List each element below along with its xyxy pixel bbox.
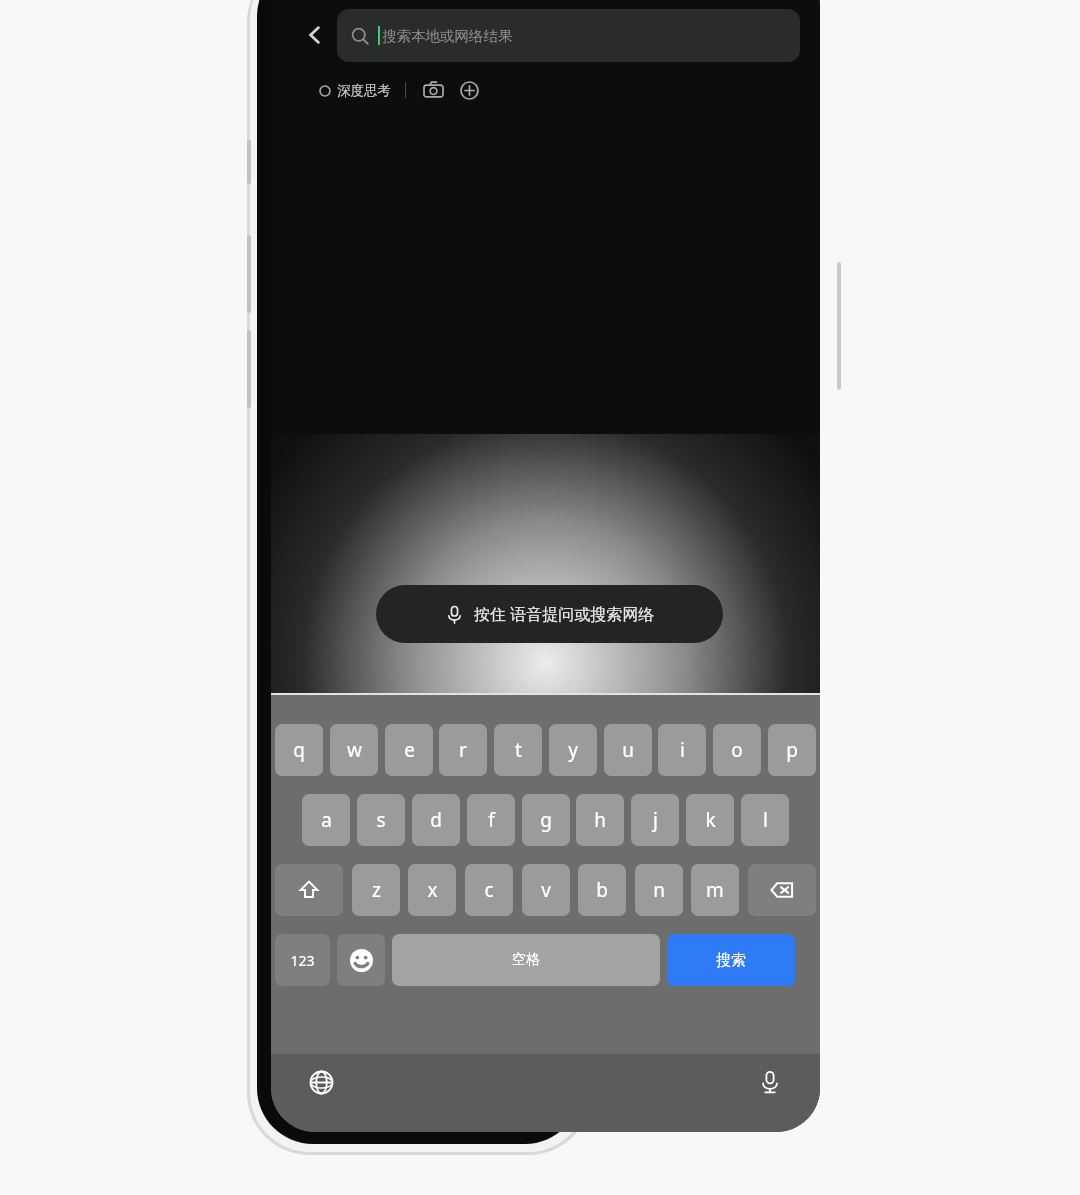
staticText: c [484,877,494,903]
staticText: t [515,737,522,763]
staticText: x [427,877,438,903]
button[interactable]: Change language [301,1062,341,1102]
staticText: 搜索本地或网络结果 [382,27,513,45]
staticText: w [347,737,362,763]
button[interactable]: 123 [275,934,330,986]
button[interactable]: 搜索 [667,934,795,986]
staticText: v [541,877,551,903]
staticText: o [731,737,743,763]
staticText: 搜索 [716,951,746,970]
button[interactable]: t [494,724,542,776]
button[interactable]: p [768,724,816,776]
button[interactable]: s [357,794,405,846]
staticText: n [653,877,665,903]
button[interactable]: x [408,864,456,916]
staticText: 按住 语音提问或搜索网络 [474,603,655,625]
staticText: j [653,807,658,833]
button[interactable]: k [686,794,734,846]
staticText: g [540,807,552,833]
button[interactable]: e [385,724,433,776]
button[interactable]: q [275,724,323,776]
button[interactable]: n [635,864,683,916]
button[interactable]: Back [293,13,337,57]
button[interactable]: Add [454,75,484,105]
button[interactable]: Voice input [750,1062,790,1102]
button[interactable]: j [631,794,679,846]
staticText: r [459,737,467,763]
button[interactable]: o [713,724,761,776]
button[interactable]: m [691,864,739,916]
staticText: e [404,737,415,763]
button[interactable]: y [549,724,597,776]
button[interactable]: v [522,864,570,916]
button[interactable]: d [412,794,460,846]
button[interactable]: Emoji [337,934,385,986]
button[interactable]: h [576,794,624,846]
button[interactable]: Shift [275,864,343,916]
button[interactable]: 深度思考 [317,78,393,103]
staticText: 空格 [512,951,540,969]
button[interactable]: l [741,794,789,846]
staticText: f [488,807,495,833]
staticText: q [293,737,305,763]
staticText: y [568,737,578,763]
button[interactable]: i [658,724,706,776]
staticText: m [706,877,724,903]
staticText: d [430,807,442,833]
button[interactable]: 搜索本地或网络结果 [337,9,800,62]
button[interactable]: b [578,864,626,916]
staticText: p [786,737,798,763]
staticText: k [705,807,716,833]
button[interactable]: u [604,724,652,776]
staticText: b [596,877,608,903]
staticText: z [372,877,381,903]
button[interactable]: f [467,794,515,846]
staticText: i [680,737,685,763]
staticText: l [763,807,768,833]
button[interactable]: r [439,724,487,776]
staticText: s [376,807,386,833]
button[interactable]: 空格 [392,934,660,986]
staticText: u [622,737,634,763]
staticText: h [594,807,606,833]
button[interactable]: c [465,864,513,916]
button[interactable]: Backspace [748,864,816,916]
staticText: a [321,807,332,833]
button[interactable]: w [330,724,378,776]
button[interactable]: z [352,864,400,916]
staticText: 123 [290,951,315,970]
button[interactable]: Camera [418,75,448,105]
staticText: 深度思考 [337,82,391,99]
button[interactable]: a [302,794,350,846]
button[interactable]: 按住 语音提问或搜索网络 [376,585,723,643]
button[interactable]: g [522,794,570,846]
